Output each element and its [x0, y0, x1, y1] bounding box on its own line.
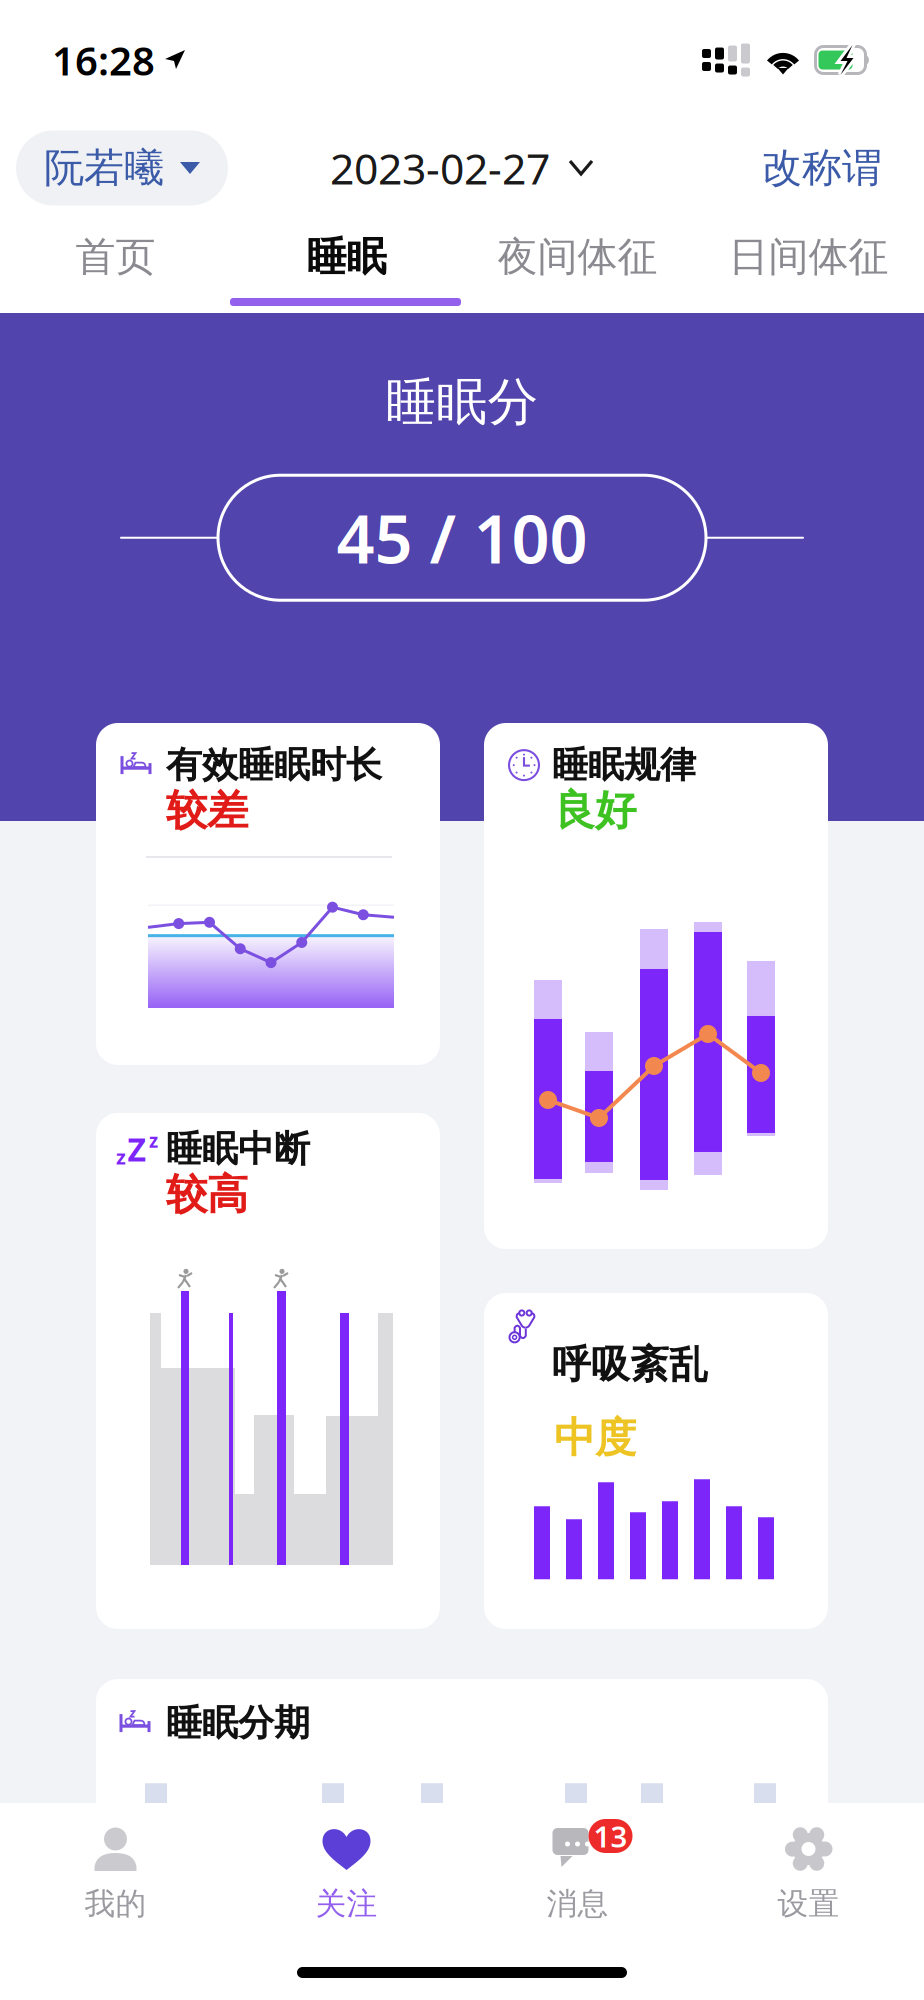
staticText: 中度: [554, 1412, 636, 1463]
button[interactable]: 阮若曦: [16, 130, 228, 205]
staticText: 较高: [166, 1169, 248, 1220]
button[interactable]: 睡眠分期: [96, 1679, 828, 1939]
staticText: 首页: [75, 232, 155, 281]
staticText: 消息: [546, 1885, 608, 1923]
staticText: z: [116, 1143, 126, 1170]
staticText: 睡眠分期: [166, 1701, 310, 1745]
button[interactable]: 关注: [231, 1821, 462, 1923]
button[interactable]: 呼吸紊乱: [484, 1293, 828, 1629]
staticText: 阮若曦: [44, 143, 164, 192]
button[interactable]: 睡眠: [231, 216, 462, 298]
staticText: 有效睡眠时长: [166, 743, 382, 787]
staticText: 睡眠分: [385, 371, 538, 433]
staticText: 睡眠规律: [552, 743, 696, 787]
button[interactable]: 2023-02-27: [330, 140, 594, 196]
staticText: 改称谓: [762, 143, 882, 192]
staticText: 睡眠: [306, 232, 386, 281]
staticText: 睡眠中断: [166, 1127, 310, 1171]
staticText: 45 / 100: [336, 493, 587, 582]
staticText: 较差: [166, 785, 248, 836]
button[interactable]: 夜间体征: [462, 216, 693, 298]
staticText: 良好: [554, 785, 636, 836]
staticText: 13: [593, 1816, 627, 1855]
staticText: 我的: [84, 1885, 146, 1923]
staticText: z: [149, 1128, 158, 1153]
button[interactable]: 睡眠规律: [484, 723, 828, 1249]
staticText: 呼吸紊乱: [552, 1341, 708, 1388]
staticText: 夜间体征: [497, 232, 657, 281]
button[interactable]: z: [96, 1113, 440, 1629]
button[interactable]: 日间体征: [693, 216, 924, 298]
button[interactable]: 有效睡眠时长: [96, 723, 440, 1065]
staticText: 关注: [315, 1885, 377, 1923]
staticText: Z: [127, 1128, 146, 1170]
button[interactable]: 首页: [0, 216, 231, 298]
button[interactable]: 13: [462, 1821, 693, 1923]
button[interactable]: 设置: [693, 1821, 924, 1923]
staticText: 日间体征: [728, 232, 888, 281]
staticText: 16:28: [52, 33, 155, 86]
button[interactable]: 我的: [0, 1821, 231, 1923]
button[interactable]: 改称谓: [762, 143, 882, 192]
staticText: 2023-02-27: [330, 140, 550, 196]
staticText: 设置: [777, 1885, 839, 1923]
